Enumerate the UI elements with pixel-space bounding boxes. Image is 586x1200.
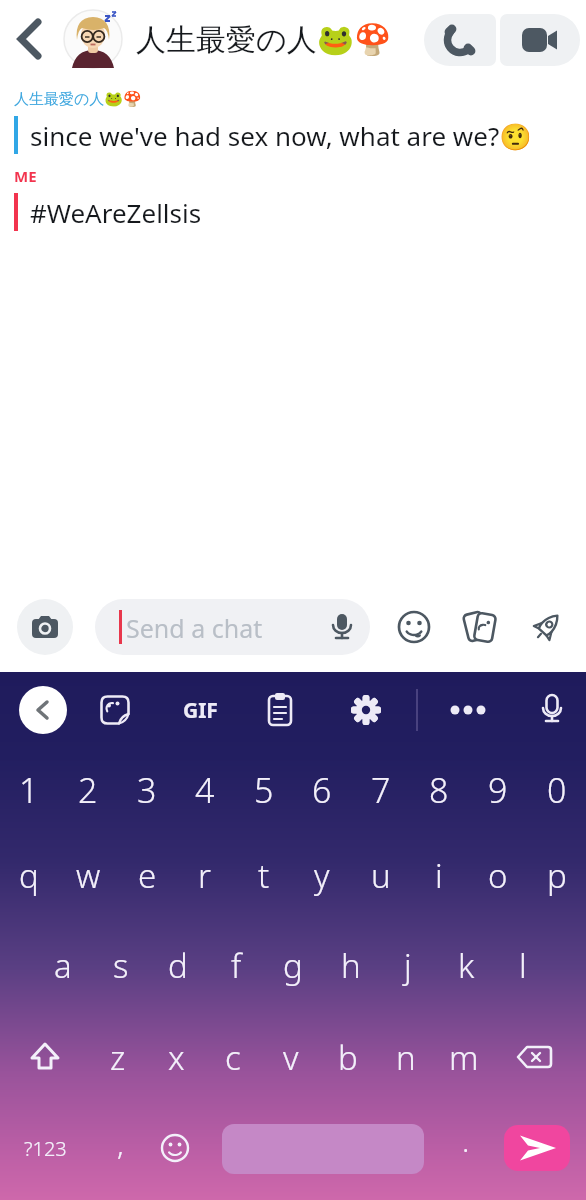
- button[interactable]: [344, 688, 388, 732]
- staticText: g: [283, 943, 303, 988]
- staticText: q: [19, 853, 39, 898]
- staticText: #WeAreZellsis: [30, 195, 202, 230]
- button[interactable]: g: [265, 937, 321, 993]
- button[interactable]: k: [438, 937, 494, 993]
- staticText: y: [314, 853, 330, 898]
- button[interactable]: [504, 1125, 570, 1171]
- staticText: since we've had sex now, what are we?🤨: [30, 118, 532, 153]
- staticText: h: [341, 943, 361, 988]
- button[interactable]: j: [380, 937, 436, 993]
- staticText: 0: [547, 767, 567, 813]
- staticText: z: [110, 1035, 126, 1080]
- staticText: 4: [195, 767, 215, 813]
- staticText: 人生最愛の人🐸🍄: [136, 21, 392, 59]
- staticText: 1: [19, 767, 39, 813]
- button[interactable]: f: [208, 937, 264, 993]
- button[interactable]: 8: [411, 762, 467, 818]
- button[interactable]: ?123: [17, 1120, 73, 1176]
- button[interactable]: 6: [294, 762, 350, 818]
- staticText: t: [258, 853, 270, 898]
- button[interactable]: q: [1, 847, 57, 903]
- staticText: 6: [312, 767, 332, 813]
- button[interactable]: [17, 1029, 73, 1085]
- staticText: 3: [137, 767, 157, 813]
- button[interactable]: v: [263, 1029, 319, 1085]
- button[interactable]: 3: [119, 762, 175, 818]
- button[interactable]: [392, 605, 436, 649]
- button[interactable]: 5: [236, 762, 292, 818]
- button[interactable]: h: [323, 937, 379, 993]
- staticText: k: [458, 943, 475, 988]
- button[interactable]: [153, 1126, 197, 1170]
- button[interactable]: [530, 688, 574, 732]
- staticText: n: [396, 1035, 416, 1080]
- staticText: 5: [254, 767, 274, 813]
- button[interactable]: [8, 11, 52, 67]
- staticText: v: [283, 1035, 299, 1080]
- button[interactable]: 1: [1, 762, 57, 818]
- button[interactable]: [222, 1124, 424, 1174]
- staticText: c: [225, 1035, 241, 1080]
- button[interactable]: b: [320, 1029, 376, 1085]
- button[interactable]: [17, 599, 73, 655]
- button[interactable]: #WeAreZellsis: [14, 193, 202, 231]
- button[interactable]: y: [294, 847, 350, 903]
- staticText: 8: [429, 767, 449, 813]
- button[interactable]: [507, 1029, 563, 1085]
- button[interactable]: d: [150, 937, 206, 993]
- button[interactable]: [424, 14, 496, 66]
- staticText: ME: [14, 166, 37, 186]
- button[interactable]: e: [119, 847, 175, 903]
- staticText: 7: [371, 767, 391, 813]
- staticText: GIF: [183, 696, 218, 725]
- staticText: 9: [488, 767, 508, 813]
- staticText: p: [547, 853, 567, 898]
- button[interactable]: p: [529, 847, 585, 903]
- staticText: 2: [78, 767, 98, 813]
- button[interactable]: .: [438, 1112, 494, 1168]
- button[interactable]: [440, 688, 496, 732]
- button[interactable]: z: [90, 1029, 146, 1085]
- button[interactable]: c: [205, 1029, 261, 1085]
- button[interactable]: m: [436, 1029, 492, 1085]
- button[interactable]: s: [93, 937, 149, 993]
- staticText: a: [54, 943, 72, 988]
- button[interactable]: r: [177, 847, 233, 903]
- button[interactable]: 7: [353, 762, 409, 818]
- button[interactable]: x: [148, 1029, 204, 1085]
- button[interactable]: o: [470, 847, 526, 903]
- button[interactable]: ,: [92, 1115, 148, 1171]
- button[interactable]: w: [60, 847, 116, 903]
- staticText: ?123: [24, 1135, 67, 1162]
- button[interactable]: 人生最愛の人🐸🍄: [136, 0, 392, 80]
- button[interactable]: 0: [529, 762, 585, 818]
- staticText: Send a chat: [126, 611, 263, 645]
- button[interactable]: [19, 686, 67, 734]
- button[interactable]: t: [236, 847, 292, 903]
- staticText: i: [435, 853, 443, 898]
- button[interactable]: [64, 10, 122, 68]
- button[interactable]: Send a chat: [95, 599, 370, 655]
- staticText: e: [138, 853, 157, 898]
- button[interactable]: 9: [470, 762, 526, 818]
- button[interactable]: GIF: [172, 688, 228, 732]
- button[interactable]: l: [495, 937, 551, 993]
- button[interactable]: [525, 605, 569, 649]
- button[interactable]: n: [378, 1029, 434, 1085]
- staticText: f: [231, 943, 242, 988]
- button[interactable]: [93, 688, 137, 732]
- button[interactable]: [500, 14, 580, 66]
- staticText: .: [462, 1120, 470, 1161]
- button[interactable]: 2: [60, 762, 116, 818]
- button[interactable]: [258, 688, 302, 732]
- staticText: d: [168, 943, 188, 988]
- staticText: ,: [117, 1123, 124, 1164]
- button[interactable]: [458, 605, 502, 649]
- button[interactable]: since we've had sex now, what are we?🤨: [14, 116, 532, 154]
- button[interactable]: a: [35, 937, 91, 993]
- staticText: m: [449, 1035, 479, 1080]
- button[interactable]: 4: [177, 762, 233, 818]
- button[interactable]: u: [353, 847, 409, 903]
- button[interactable]: i: [411, 847, 467, 903]
- staticText: r: [198, 853, 212, 898]
